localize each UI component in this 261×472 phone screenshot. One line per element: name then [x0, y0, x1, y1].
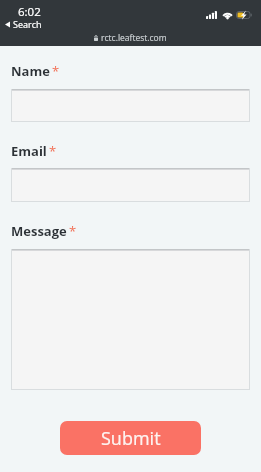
staticText: rctc.leaftest.com	[101, 32, 167, 44]
staticText: *	[52, 62, 60, 80]
button[interactable]: Submit	[60, 421, 201, 455]
staticText: Email	[11, 142, 47, 160]
button[interactable]: rctc.leaftest.com	[94, 32, 167, 44]
button[interactable]: Text input	[11, 168, 250, 202]
staticText: Message	[11, 222, 67, 240]
button[interactable]: Text input	[11, 89, 250, 122]
staticText: Name	[11, 62, 50, 80]
staticText: Submit	[101, 426, 161, 451]
button[interactable]: Back to Search	[5, 18, 42, 30]
staticText: 6:02	[18, 4, 41, 20]
button[interactable]: Text input	[11, 249, 250, 390]
staticText: *	[69, 222, 77, 240]
staticText: Search	[13, 18, 42, 30]
staticText: *	[49, 142, 57, 160]
